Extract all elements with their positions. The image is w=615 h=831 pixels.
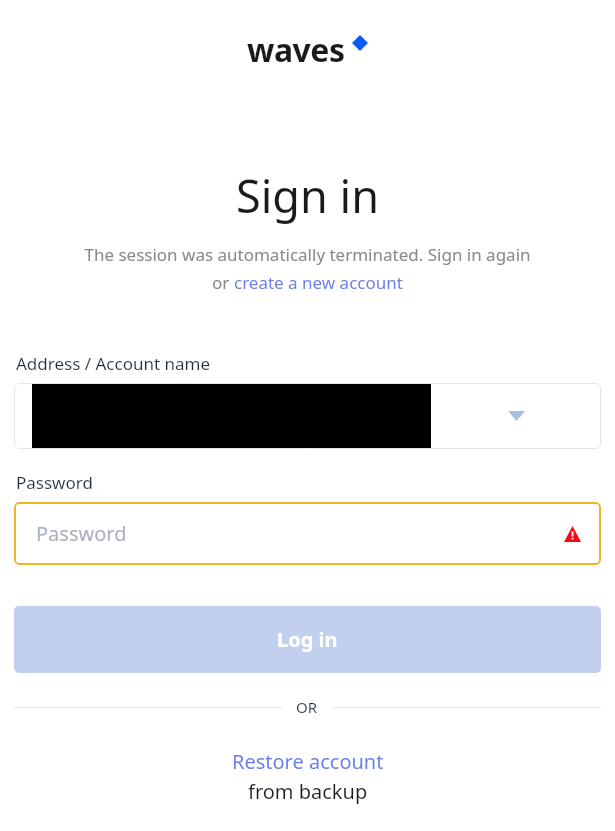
staticText: Password: [16, 471, 93, 494]
button[interactable]: Restore account: [0, 748, 615, 805]
staticText: Password: [36, 520, 564, 547]
staticText: The session was automatically terminated…: [0, 243, 615, 266]
staticText: Address / Account name: [16, 352, 211, 375]
staticText: Log in: [277, 626, 338, 653]
button[interactable]: waves: [0, 28, 615, 72]
button[interactable]: Password: [14, 502, 601, 565]
other: Password error: [564, 526, 581, 542]
staticText: OR: [296, 697, 318, 717]
staticText: or: [212, 271, 234, 294]
staticText: Restore account: [232, 748, 384, 775]
staticText: Sign in: [0, 165, 615, 226]
other: Open account list: [508, 411, 525, 421]
button[interactable]: create a new account: [234, 271, 403, 294]
button[interactable]: Log in: [14, 606, 601, 673]
button[interactable]: Open account list: [14, 383, 601, 449]
staticText: waves: [247, 28, 345, 72]
staticText: from backup: [248, 778, 368, 805]
staticText: create a new account: [234, 271, 403, 294]
